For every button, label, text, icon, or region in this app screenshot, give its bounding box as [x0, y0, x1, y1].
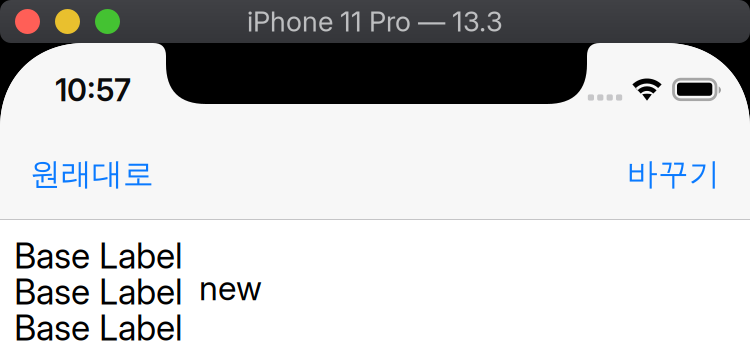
button[interactable]: 바꾸기: [627, 155, 720, 193]
staticText: 10:57: [55, 71, 131, 108]
button[interactable]: Close window: [15, 9, 40, 34]
staticText: 바꾸기: [627, 155, 720, 193]
staticText: iPhone 11 Pro — 13.3: [247, 5, 503, 38]
staticText: Base Label: [14, 235, 183, 277]
staticText: Base Label: [14, 271, 183, 313]
button[interactable]: Zoom window: [95, 9, 120, 34]
button[interactable]: Minimize window: [55, 9, 80, 34]
button[interactable]: 원래대로: [30, 155, 154, 193]
staticText: 원래대로: [30, 155, 154, 193]
staticText: new: [199, 268, 262, 308]
staticText: Base Label: [14, 307, 183, 349]
